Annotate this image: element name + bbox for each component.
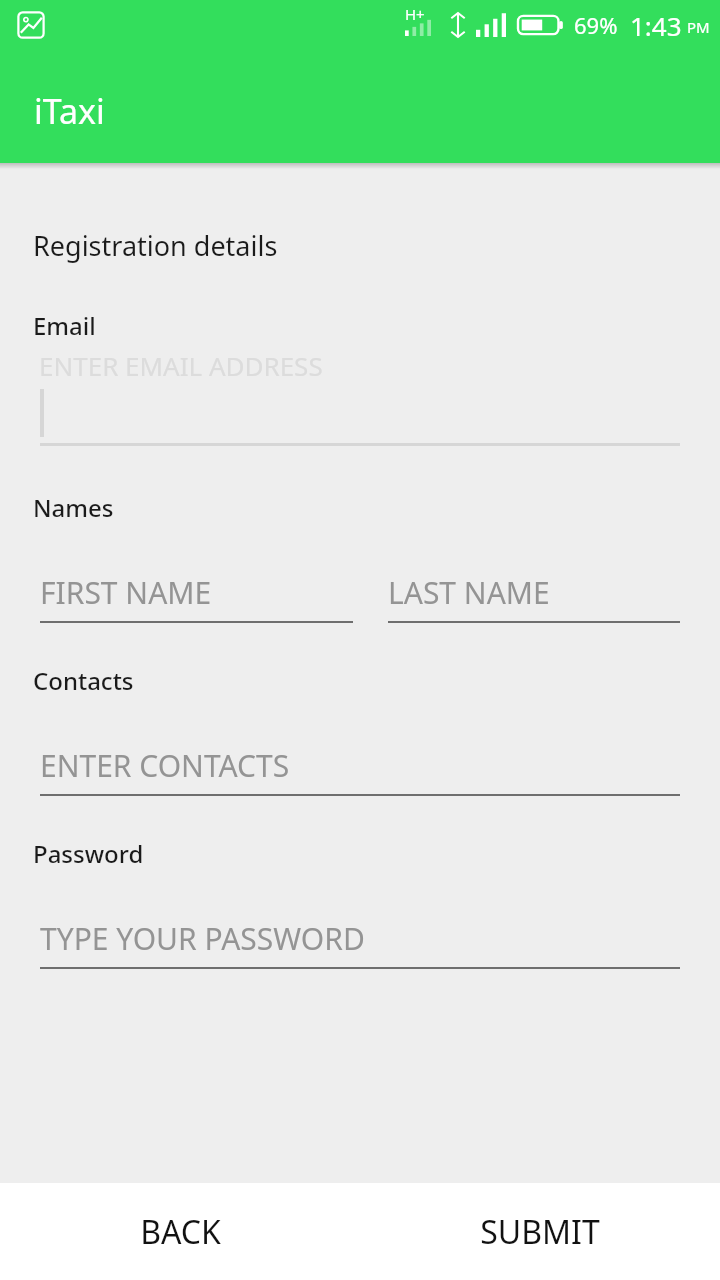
button[interactable]: ENTER CONTACTS	[40, 745, 680, 796]
staticText: Contacts	[33, 664, 134, 697]
button[interactable]: LAST NAME	[388, 572, 680, 623]
button[interactable]: FIRST NAME	[40, 572, 353, 623]
staticText: 1:43	[630, 8, 682, 43]
staticText: PM	[687, 17, 710, 37]
button[interactable]: SUBMIT	[360, 1183, 720, 1280]
staticText: Email	[33, 309, 96, 342]
staticText: iTaxi	[34, 88, 105, 134]
staticText: BACK	[140, 1210, 221, 1254]
staticText: ENTER CONTACTS	[40, 745, 290, 786]
staticText: FIRST NAME	[40, 572, 212, 613]
staticText: ENTER EMAIL ADDRESS	[39, 348, 323, 383]
staticText: SUBMIT	[480, 1210, 600, 1254]
button[interactable]	[0, 383, 720, 451]
staticText: Names	[33, 491, 114, 524]
button[interactable]: BACK	[0, 1183, 360, 1280]
staticText: TYPE YOUR PASSWORD	[40, 918, 365, 959]
staticText: H+	[405, 4, 425, 24]
staticText: Registration details	[33, 227, 278, 264]
staticText: 69%	[574, 10, 618, 40]
other: Screenshot	[16, 10, 46, 40]
staticText: LAST NAME	[388, 572, 550, 613]
staticText: Password	[33, 837, 144, 870]
button[interactable]: TYPE YOUR PASSWORD	[40, 918, 680, 969]
